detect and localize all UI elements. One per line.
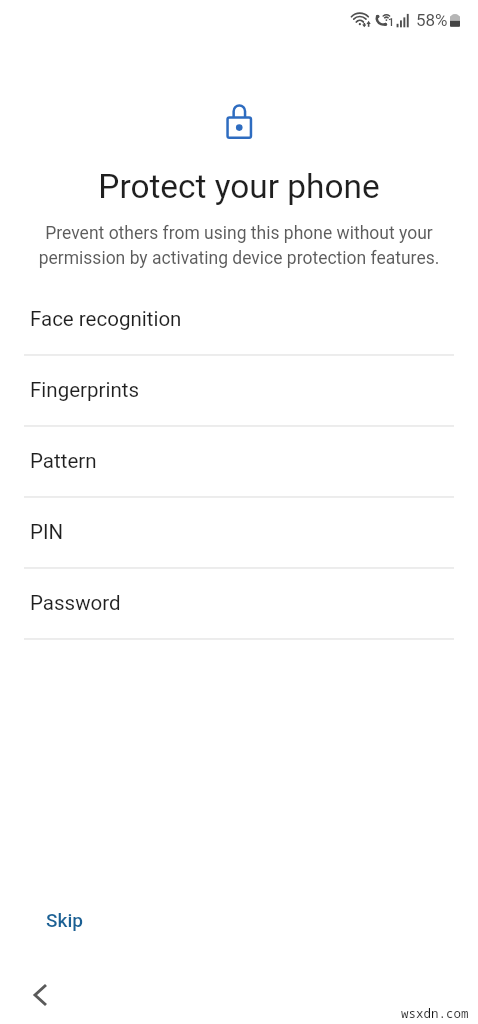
button[interactable]: Face recognition xyxy=(24,284,454,355)
staticText: Protect your phone xyxy=(0,167,478,206)
staticText: Prevent others from using this phone wit… xyxy=(22,223,456,268)
staticText: Pattern xyxy=(30,449,97,473)
button[interactable]: Fingerprints xyxy=(24,355,454,426)
button[interactable]: Pattern xyxy=(24,426,454,497)
staticText: Fingerprints xyxy=(30,378,140,402)
button[interactable]: Skip xyxy=(30,900,99,940)
staticText: 58% xyxy=(416,10,448,30)
staticText: Face recognition xyxy=(30,307,182,331)
staticText: 1 xyxy=(388,16,395,29)
staticText: PIN xyxy=(30,520,64,544)
button[interactable]: Password xyxy=(24,568,454,639)
staticText: Password xyxy=(30,591,121,615)
button[interactable]: Back xyxy=(21,975,61,1015)
staticText: wsxdn.com xyxy=(401,1005,469,1022)
button[interactable]: PIN xyxy=(24,497,454,568)
staticText: Skip xyxy=(46,909,83,931)
